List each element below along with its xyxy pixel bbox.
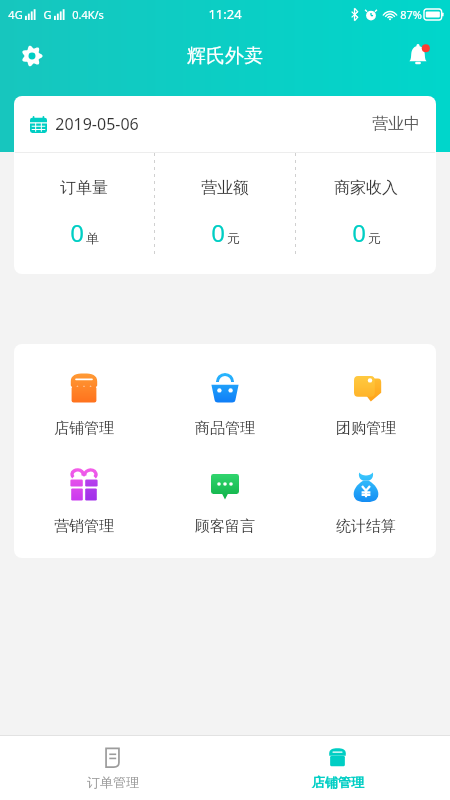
button[interactable]: 商品管理 — [154, 360, 295, 444]
button[interactable]: 店铺管理 — [14, 360, 154, 444]
staticText: 单 — [86, 230, 99, 246]
staticText: 顾客留言 — [195, 517, 255, 536]
staticText: 商品管理 — [195, 419, 255, 438]
staticText: 团购管理 — [336, 419, 396, 438]
staticText: 0.4K/s — [72, 7, 104, 22]
button[interactable]: 营销管理 — [14, 458, 154, 542]
staticText: 统计结算 — [336, 517, 396, 536]
button[interactable]: 订单管理 — [0, 736, 225, 800]
button[interactable]: 营业额 — [155, 153, 295, 274]
staticText: 营业额 — [201, 178, 249, 198]
staticText: 2019-05-06 — [55, 113, 139, 135]
staticText: 87% — [400, 7, 422, 22]
staticText: 0 — [211, 216, 225, 249]
staticText: 0 — [70, 216, 84, 249]
button[interactable]: 2019-05-06 — [14, 96, 436, 152]
staticText: 店铺管理 — [312, 774, 364, 790]
staticText: 辉氏外卖 — [187, 44, 263, 68]
staticText: 订单量 — [60, 178, 108, 198]
staticText: 营业中 — [372, 114, 420, 134]
staticText: 4G — [8, 7, 23, 22]
button[interactable]: 顾客留言 — [154, 458, 295, 542]
button[interactable]: 订单量 — [14, 153, 154, 274]
staticText: 订单管理 — [87, 774, 139, 790]
staticText: 11:24 — [208, 5, 242, 23]
button[interactable]: Notifications — [396, 34, 440, 78]
staticText: 0 — [352, 216, 366, 249]
button[interactable]: Settings — [10, 34, 54, 78]
staticText: 店铺管理 — [54, 419, 114, 438]
staticText: G — [43, 7, 52, 22]
button[interactable]: 店铺管理 — [225, 736, 450, 800]
button[interactable]: 统计结算 — [295, 458, 436, 542]
button[interactable]: 团购管理 — [295, 360, 436, 444]
staticText: 元 — [227, 230, 240, 246]
staticText: 营销管理 — [54, 517, 114, 536]
button[interactable]: 商家收入 — [296, 153, 436, 274]
staticText: 元 — [368, 230, 381, 246]
staticText: 商家收入 — [334, 178, 398, 198]
